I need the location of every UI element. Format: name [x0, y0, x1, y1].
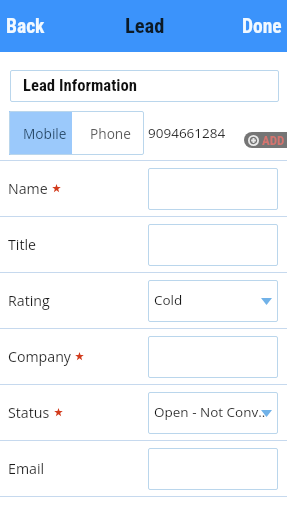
staticText: ADD: [262, 133, 285, 148]
button[interactable]: Done: [232, 7, 287, 46]
button[interactable]: Status: [0, 385, 287, 441]
staticText: Phone: [90, 124, 131, 143]
button[interactable]: Title: [0, 217, 287, 273]
staticText: Open - Not Conv..: [154, 403, 266, 421]
staticText: Email: [8, 459, 45, 478]
staticText: Company: [8, 347, 71, 366]
staticText: Lead: [125, 14, 165, 38]
staticText: Back: [6, 15, 45, 38]
staticText: 9094661284: [148, 124, 226, 142]
staticText: Title: [8, 235, 37, 254]
staticText: Done: [242, 15, 282, 38]
staticText: Status: [8, 403, 50, 422]
button[interactable]: Rating: [0, 273, 287, 329]
button[interactable]: Add phone number: [244, 132, 287, 148]
staticText: Lead Information: [23, 76, 138, 96]
staticText: Cold: [154, 291, 183, 309]
button[interactable]: Back: [0, 7, 55, 46]
button[interactable]: Company: [0, 329, 287, 385]
button[interactable]: Email: [0, 441, 287, 497]
button[interactable]: Phone: [72, 111, 144, 155]
staticText: Rating: [8, 291, 50, 310]
button[interactable]: Lead Information: [10, 70, 279, 102]
staticText: Name: [8, 179, 48, 198]
staticText: Mobile: [23, 124, 67, 143]
button[interactable]: Mobile: [9, 111, 72, 155]
button[interactable]: Name: [0, 161, 287, 217]
